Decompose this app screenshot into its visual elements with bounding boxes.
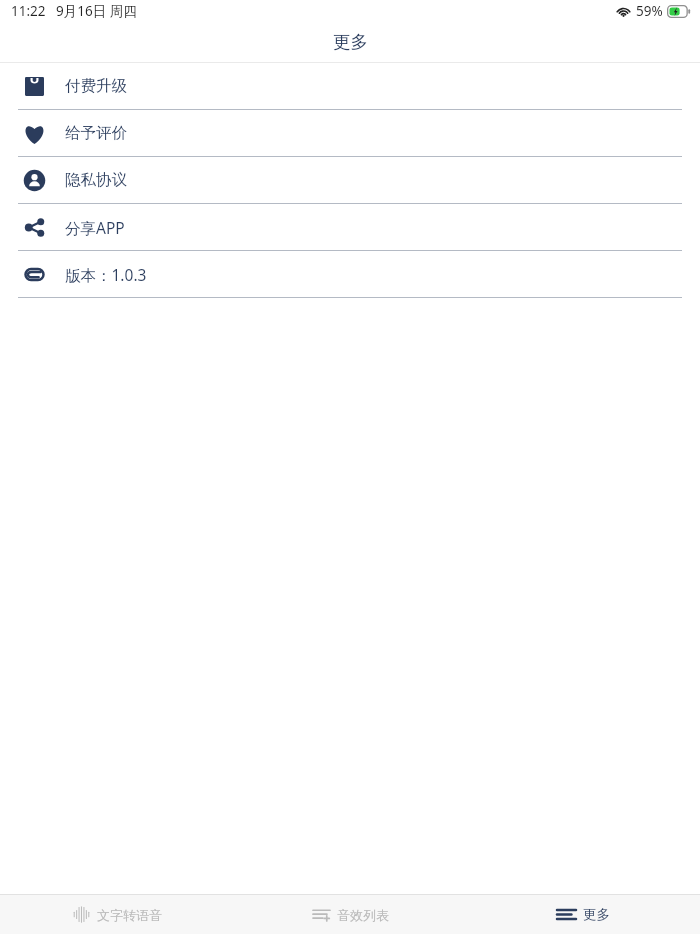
staticText: 付费升级 bbox=[65, 76, 127, 96]
staticText: 更多 bbox=[333, 31, 368, 53]
staticText: 59% bbox=[636, 2, 663, 20]
staticText: 版本：1.0.3 bbox=[65, 264, 147, 285]
button[interactable]: 分享APP bbox=[0, 204, 700, 250]
staticText: 分享APP bbox=[65, 217, 125, 238]
staticText: 11:22 bbox=[11, 2, 46, 20]
staticText: 给予评价 bbox=[65, 123, 127, 143]
button[interactable]: 文字转语音 bbox=[0, 895, 234, 934]
button[interactable]: 隐私协议 bbox=[0, 157, 700, 203]
button[interactable]: 版本：1.0.3 bbox=[0, 251, 700, 297]
staticText: 文字转语音 bbox=[97, 907, 162, 923]
staticText: 音效列表 bbox=[337, 907, 389, 923]
staticText: 隐私协议 bbox=[65, 170, 127, 190]
button[interactable]: 付费升级 bbox=[0, 63, 700, 109]
button[interactable]: 更多 bbox=[467, 895, 700, 934]
button[interactable]: 音效列表 bbox=[234, 895, 467, 934]
staticText: 9月16日 周四 bbox=[56, 2, 137, 20]
button[interactable]: 给予评价 bbox=[0, 110, 700, 156]
staticText: 更多 bbox=[583, 906, 610, 923]
